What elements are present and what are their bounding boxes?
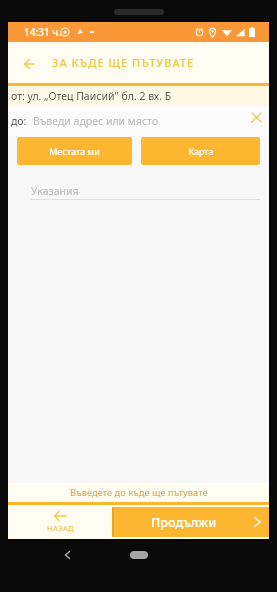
staticText: Указания	[31, 184, 79, 198]
staticText: до:	[11, 114, 27, 128]
button[interactable]: Карта	[141, 137, 260, 165]
staticText: Продължи	[151, 514, 217, 531]
button[interactable]: Home	[130, 551, 148, 559]
staticText: 14:31 ч.	[24, 25, 61, 39]
button[interactable]: НАЗАД	[8, 505, 112, 539]
button[interactable]: Продължи	[112, 507, 269, 537]
staticText: Карта	[188, 145, 214, 157]
button[interactable]: Местата ми	[17, 137, 132, 165]
staticText: Въведи адрес или място	[33, 114, 159, 128]
staticText: Въведете до къде ще пътувате	[70, 486, 208, 499]
staticText: от: ул. „Отец Паисий" бл. 2 вх. Б	[11, 89, 172, 103]
staticText: ЗА КЪДЕ ЩЕ ПЪТУВАТЕ	[52, 55, 195, 70]
button[interactable]: Back	[21, 55, 38, 72]
button[interactable]: Clear destination	[246, 107, 266, 127]
staticText: Местата ми	[49, 145, 100, 157]
staticText: НАЗАД	[47, 523, 74, 533]
button[interactable]: Back	[56, 544, 78, 566]
